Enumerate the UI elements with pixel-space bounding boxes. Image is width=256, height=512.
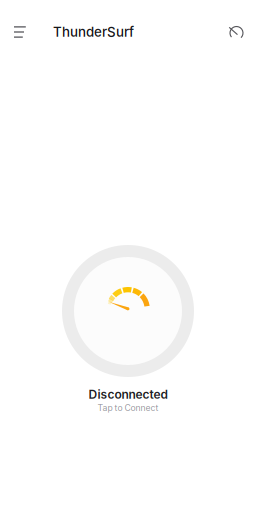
staticText: ThunderSurf [53,24,134,40]
button[interactable]: Speed test [219,10,256,54]
button[interactable]: Menu [0,10,53,54]
staticText: Disconnected [88,387,167,401]
button[interactable]: Connect [62,245,194,377]
staticText: Tap to Connect [97,402,158,413]
